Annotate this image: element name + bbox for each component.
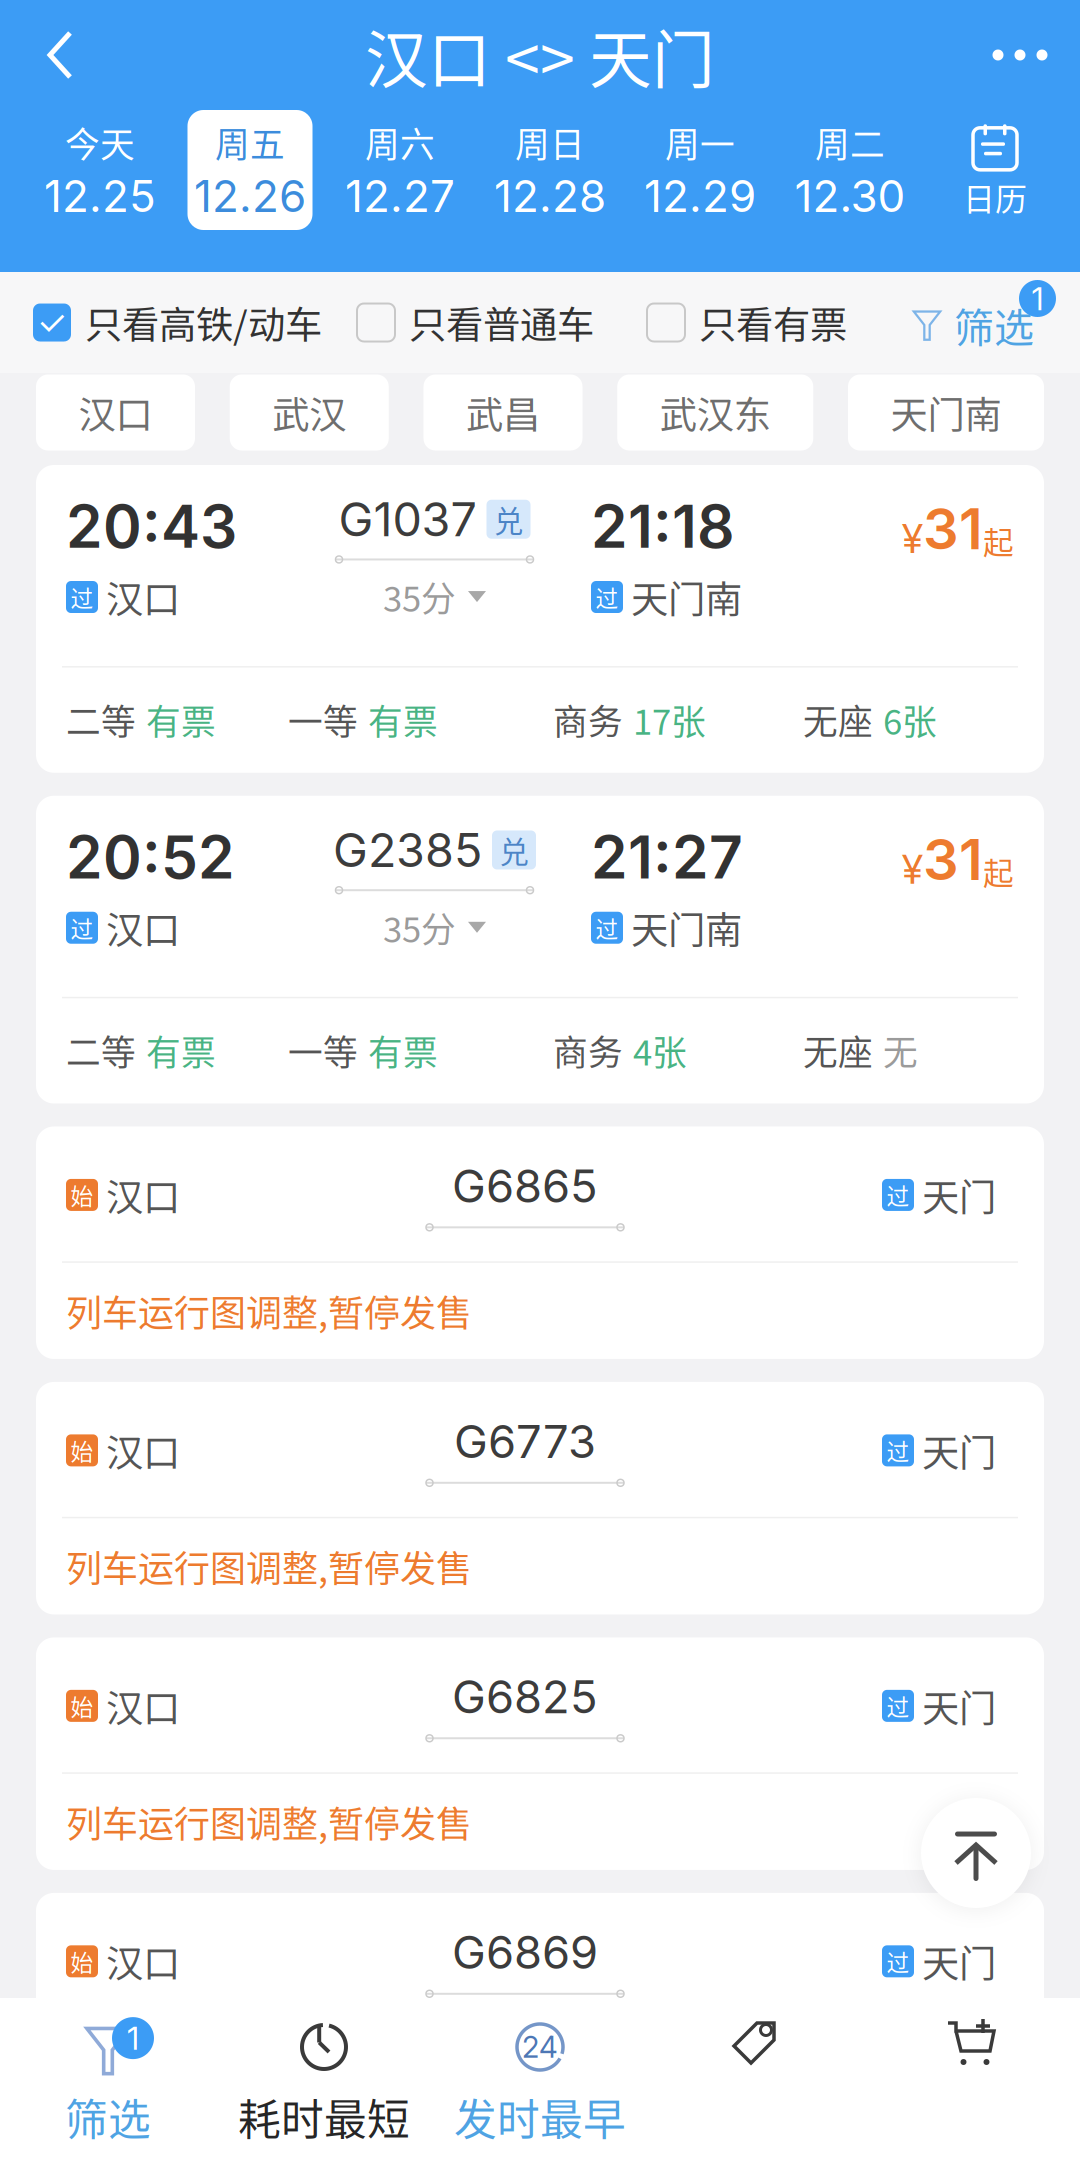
staticText: 周日	[515, 117, 585, 167]
staticText: 天门	[922, 1679, 996, 1733]
staticText: 商务	[553, 1025, 623, 1075]
staticText: ¥	[902, 514, 923, 563]
staticText: 过	[886, 1689, 909, 1722]
staticText: 发时最早	[454, 2086, 626, 2148]
staticText: ¥	[902, 845, 923, 893]
button[interactable]: 耗时最短	[216, 1998, 432, 2159]
staticText: 过	[595, 581, 618, 613]
staticText: 汉口	[106, 901, 180, 955]
staticText: 汉口	[78, 385, 152, 440]
staticText: 武汉	[272, 385, 346, 440]
staticText: 周一	[665, 117, 735, 167]
staticText: 列车运行图调整,暂停发售	[66, 2051, 472, 2103]
staticText: G1037	[338, 491, 476, 547]
button[interactable]: Back	[0, 7, 120, 103]
staticText: 天门南	[890, 385, 1001, 440]
staticText: 17张	[633, 694, 706, 745]
staticText: 周五	[215, 117, 285, 167]
staticText: 过	[886, 1178, 909, 1211]
button[interactable]: Promotions	[648, 1996, 864, 2159]
staticText: 二等	[66, 1025, 136, 1075]
staticText: 无座	[803, 694, 873, 745]
staticText: G6773	[454, 1414, 596, 1469]
staticText: 6张	[883, 694, 937, 745]
button[interactable]: 武昌	[423, 374, 582, 450]
staticText: G6825	[452, 1669, 598, 1724]
staticText: 始	[70, 1689, 93, 1722]
staticText: 天门	[922, 1423, 996, 1477]
staticText: 12.28	[494, 169, 606, 223]
button[interactable]: 周二	[775, 110, 925, 230]
staticText: 列车运行图调整,暂停发售	[66, 1796, 472, 1848]
staticText: 24	[522, 2029, 558, 2065]
staticText: 天门南	[631, 570, 742, 624]
button[interactable]: 汉口	[36, 374, 195, 450]
staticText: 周六	[365, 117, 435, 167]
button[interactable]: 始	[36, 1382, 1044, 1614]
staticText: 无座	[803, 1025, 873, 1075]
staticText: 4张	[633, 1025, 687, 1075]
staticText: 始	[70, 1178, 93, 1211]
button[interactable]: 周六	[325, 110, 475, 230]
staticText: 汉口	[106, 1679, 180, 1733]
button[interactable]: 周日	[475, 110, 625, 230]
staticText: 12.30	[794, 169, 905, 223]
staticText: 20:52	[66, 822, 235, 893]
button[interactable]: 只看普通车	[357, 295, 594, 350]
staticText: 汉口	[106, 570, 180, 624]
staticText: 耗时最短	[238, 2086, 410, 2148]
staticText: 列车运行图调整,暂停发售	[66, 1540, 472, 1592]
staticText: G6865	[452, 1158, 598, 1213]
button[interactable]: 始	[36, 1893, 1044, 2125]
button[interactable]: 武汉	[230, 374, 389, 450]
button[interactable]: Scroll to top	[921, 1798, 1031, 1908]
staticText: 一等	[288, 694, 358, 745]
staticText: 天门南	[631, 901, 742, 955]
button[interactable]: 天门南	[848, 374, 1044, 450]
button[interactable]: Calendar	[930, 110, 1060, 230]
button[interactable]: 武汉东	[617, 374, 813, 450]
staticText: 起	[983, 849, 1014, 893]
staticText: G2385	[333, 822, 482, 878]
staticText: 12.26	[194, 169, 306, 223]
staticText: 20:43	[66, 491, 237, 562]
staticText: 起	[983, 518, 1014, 563]
button[interactable]: 始	[36, 1637, 1044, 1870]
staticText: 汉口	[106, 1934, 180, 1988]
button[interactable]: 20:43	[36, 465, 1044, 773]
staticText: 过	[70, 911, 93, 944]
staticText: 只看高铁/动车	[85, 295, 322, 350]
staticText: 12.27	[345, 169, 455, 223]
button[interactable]: 24	[432, 1998, 648, 2159]
staticText: 21:27	[591, 822, 743, 893]
staticText: 周二	[815, 117, 885, 167]
button[interactable]: 今天	[25, 110, 175, 230]
staticText: 1	[127, 2019, 139, 2057]
button[interactable]: ✓	[33, 295, 322, 350]
staticText: 1	[1031, 279, 1043, 318]
staticText: 21:18	[591, 491, 735, 562]
staticText: 兑	[499, 829, 528, 871]
staticText: 过	[70, 581, 93, 613]
button[interactable]: 1	[0, 1998, 216, 2159]
staticText: 二等	[66, 694, 136, 745]
button[interactable]: 筛选	[912, 272, 1034, 373]
button[interactable]: 20:52	[36, 796, 1044, 1103]
staticText: 列车运行图调整,暂停发售	[66, 1285, 472, 1337]
button[interactable]: More	[960, 7, 1080, 103]
button[interactable]: 始	[36, 1126, 1044, 1359]
staticText: 35分	[383, 571, 456, 622]
button[interactable]: 周五	[175, 110, 325, 230]
staticText: 过	[886, 1945, 909, 1978]
button[interactable]: Cart	[864, 1997, 1080, 2159]
button[interactable]: 只看有票	[647, 295, 847, 350]
staticText: 天门	[922, 1934, 996, 1988]
button[interactable]: 周一	[625, 110, 775, 230]
staticText: ✓	[37, 301, 67, 343]
staticText: 一等	[288, 1025, 358, 1075]
staticText: 兑	[494, 498, 523, 540]
staticText: 过	[595, 911, 618, 944]
staticText: 无	[883, 1025, 918, 1075]
staticText: 天门	[922, 1168, 996, 1222]
staticText: 31	[923, 495, 983, 563]
